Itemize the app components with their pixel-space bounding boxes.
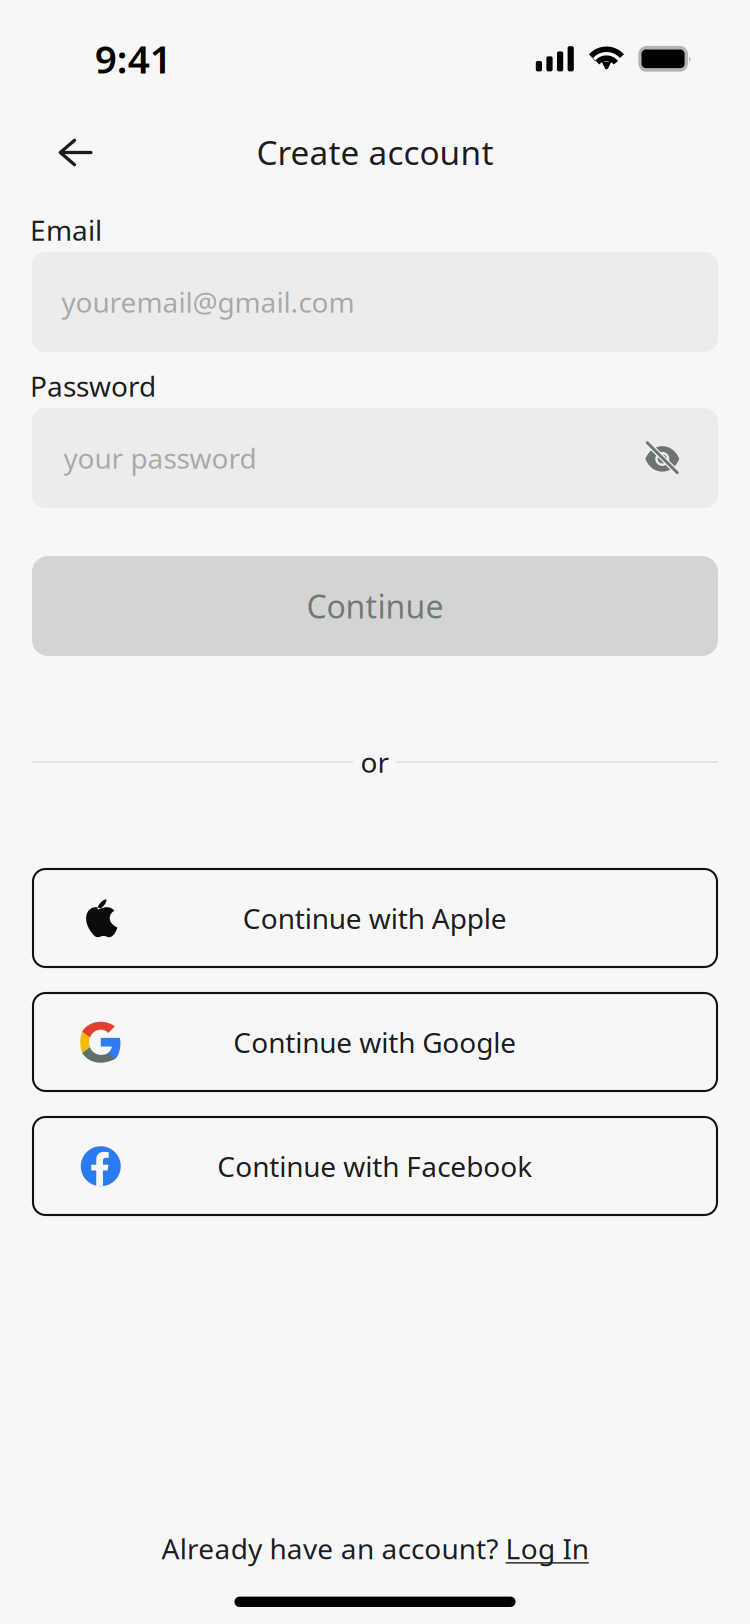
staticText: Log In — [506, 1530, 589, 1567]
staticText: youremail@gmail.com — [61, 283, 354, 321]
staticText: Password — [30, 367, 156, 405]
staticText: Continue with Apple — [243, 900, 507, 937]
staticText: Email — [30, 211, 102, 249]
button[interactable]: Continue with Facebook — [33, 1117, 717, 1215]
staticText: Continue with Google — [233, 1024, 516, 1061]
staticText: Continue with Facebook — [217, 1148, 532, 1185]
button[interactable]: Continue — [32, 556, 718, 656]
button[interactable]: Show password — [634, 431, 690, 487]
button[interactable]: Log In — [506, 1530, 589, 1567]
button[interactable]: Back — [45, 122, 105, 182]
button[interactable]: Continue with Apple — [33, 869, 717, 967]
staticText: 9:41 — [95, 33, 172, 84]
button[interactable]: Continue with Google — [33, 993, 717, 1091]
staticText: your password — [63, 439, 256, 477]
staticText: or — [360, 743, 389, 781]
staticText: Already have an account? — [162, 1530, 506, 1567]
staticText: Continue — [306, 585, 443, 627]
staticText: Create account — [256, 130, 493, 174]
